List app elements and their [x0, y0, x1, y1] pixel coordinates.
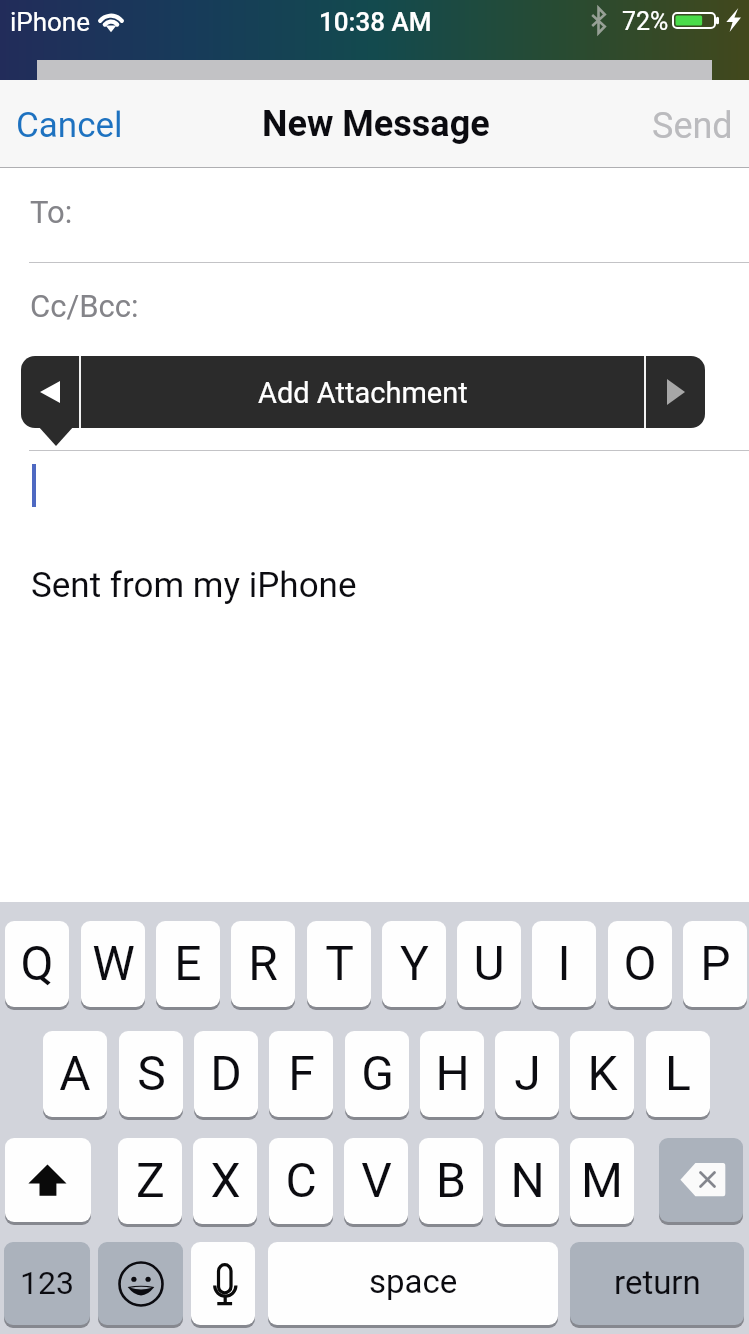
staticText: space	[369, 1262, 458, 1301]
button[interactable]: Previous	[21, 356, 79, 428]
button[interactable]: K	[570, 1031, 634, 1117]
staticText: Add Attachment	[258, 376, 468, 410]
button[interactable]: F	[269, 1031, 333, 1117]
button[interactable]: A	[43, 1031, 107, 1117]
button[interactable]: Shift	[5, 1138, 91, 1222]
button[interactable]: U	[457, 921, 521, 1007]
staticText: V	[361, 1152, 392, 1208]
button[interactable]: M	[570, 1138, 634, 1224]
staticText: N	[510, 1152, 545, 1208]
staticText: S	[137, 1045, 166, 1101]
button[interactable]: Next	[646, 356, 705, 428]
staticText: E	[174, 935, 202, 991]
staticText: H	[435, 1045, 470, 1101]
button[interactable]: Numbers	[4, 1242, 90, 1325]
staticText: M	[581, 1152, 623, 1208]
button[interactable]: H	[420, 1031, 484, 1117]
button[interactable]: Y	[382, 921, 446, 1007]
button[interactable]: S	[119, 1031, 183, 1117]
button[interactable]: Q	[5, 921, 69, 1007]
staticText: T	[325, 935, 354, 991]
staticText: return	[614, 1263, 701, 1302]
staticText: Sent from my iPhone	[31, 565, 357, 606]
button[interactable]: Backspace	[659, 1138, 743, 1222]
button[interactable]: Cancel	[0, 92, 145, 157]
staticText: 72%	[622, 7, 669, 36]
staticText: P	[700, 935, 731, 991]
staticText: I	[557, 935, 571, 991]
button[interactable]: G	[345, 1031, 409, 1117]
button[interactable]: P	[683, 921, 747, 1007]
staticText: Cancel	[16, 105, 123, 146]
button[interactable]: X	[193, 1138, 257, 1224]
button[interactable]: J	[495, 1031, 559, 1117]
button[interactable]: Emoji	[98, 1242, 183, 1325]
staticText: L	[665, 1045, 691, 1101]
button[interactable]: R	[231, 921, 295, 1007]
staticText: B	[436, 1152, 466, 1208]
staticText: Cc/Bcc:	[30, 288, 139, 324]
staticText: K	[587, 1045, 618, 1101]
button[interactable]: Z	[118, 1138, 182, 1224]
staticText: R	[248, 935, 278, 991]
staticText: New Message	[262, 103, 490, 145]
button[interactable]: E	[156, 921, 220, 1007]
button[interactable]: Dictation	[191, 1242, 255, 1325]
button[interactable]: I	[532, 921, 596, 1007]
button[interactable]: L	[646, 1031, 710, 1117]
staticText: 10:38 AM	[319, 7, 432, 37]
staticText: F	[288, 1045, 315, 1101]
staticText: Q	[20, 935, 54, 991]
staticText: iPhone	[10, 7, 91, 37]
staticText: To:	[30, 194, 73, 230]
staticText: W	[92, 935, 135, 991]
button[interactable]: V	[344, 1138, 408, 1224]
button[interactable]: To:	[0, 168, 749, 263]
button[interactable]: W	[81, 921, 145, 1007]
button[interactable]: O	[608, 921, 672, 1007]
staticText: X	[210, 1152, 241, 1208]
staticText: A	[59, 1045, 91, 1101]
staticText: J	[514, 1045, 541, 1101]
button[interactable]: T	[307, 921, 371, 1007]
button[interactable]: Add Attachment	[81, 356, 644, 428]
staticText: G	[361, 1045, 394, 1101]
staticText: C	[285, 1152, 317, 1208]
button[interactable]: Cc/Bcc:	[0, 263, 749, 358]
staticText: Send	[652, 105, 733, 147]
staticText: Z	[136, 1152, 165, 1208]
button[interactable]: return	[570, 1242, 744, 1325]
button[interactable]: B	[419, 1138, 483, 1224]
staticText: U	[473, 935, 505, 991]
button[interactable]: Send	[632, 91, 749, 157]
staticText: 123	[20, 1264, 74, 1302]
button[interactable]: space	[268, 1242, 558, 1325]
button[interactable]: D	[194, 1031, 258, 1117]
staticText: Y	[400, 935, 429, 991]
staticText: O	[623, 935, 657, 991]
button[interactable]: C	[269, 1138, 333, 1224]
staticText: D	[210, 1045, 242, 1101]
button[interactable]: N	[495, 1138, 559, 1224]
